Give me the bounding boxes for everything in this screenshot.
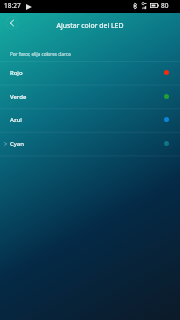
staticText: Por favor, elija colores claros (10, 51, 71, 57)
button[interactable]: Azul (0, 109, 180, 132)
staticText: Azul (10, 116, 22, 124)
button[interactable]: Rojo (0, 62, 180, 85)
button[interactable]: Verde (0, 86, 180, 109)
button[interactable]: Back (5, 16, 19, 30)
staticText: Cyan (10, 140, 24, 148)
staticText: 80 (161, 1, 169, 10)
staticText: Ajustar color del LED (0, 21, 180, 30)
button[interactable]: Cyan (0, 133, 180, 156)
staticText: Rojo (10, 69, 23, 77)
staticText: 18:27 (4, 1, 21, 10)
staticText: Verde (10, 93, 27, 101)
